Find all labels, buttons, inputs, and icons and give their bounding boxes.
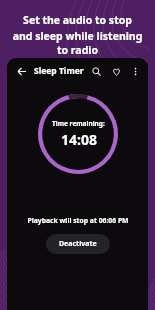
button[interactable]: Back	[12, 62, 30, 80]
button[interactable]: Deactivate	[46, 234, 110, 254]
staticText: Time remaining:	[52, 119, 105, 128]
staticText: Set the audio to stop	[23, 13, 132, 27]
button[interactable]: Search	[87, 62, 105, 80]
staticText: Deactivate	[59, 239, 97, 249]
button[interactable]: Favorite	[107, 62, 125, 80]
staticText: and sleep while listening to radio	[6, 29, 149, 57]
staticText: Playback will stop at 06:06 PM	[27, 216, 129, 225]
staticText: Sleep Timer	[34, 65, 84, 77]
staticText: 14:08	[61, 130, 97, 149]
button[interactable]: More options	[127, 63, 143, 79]
